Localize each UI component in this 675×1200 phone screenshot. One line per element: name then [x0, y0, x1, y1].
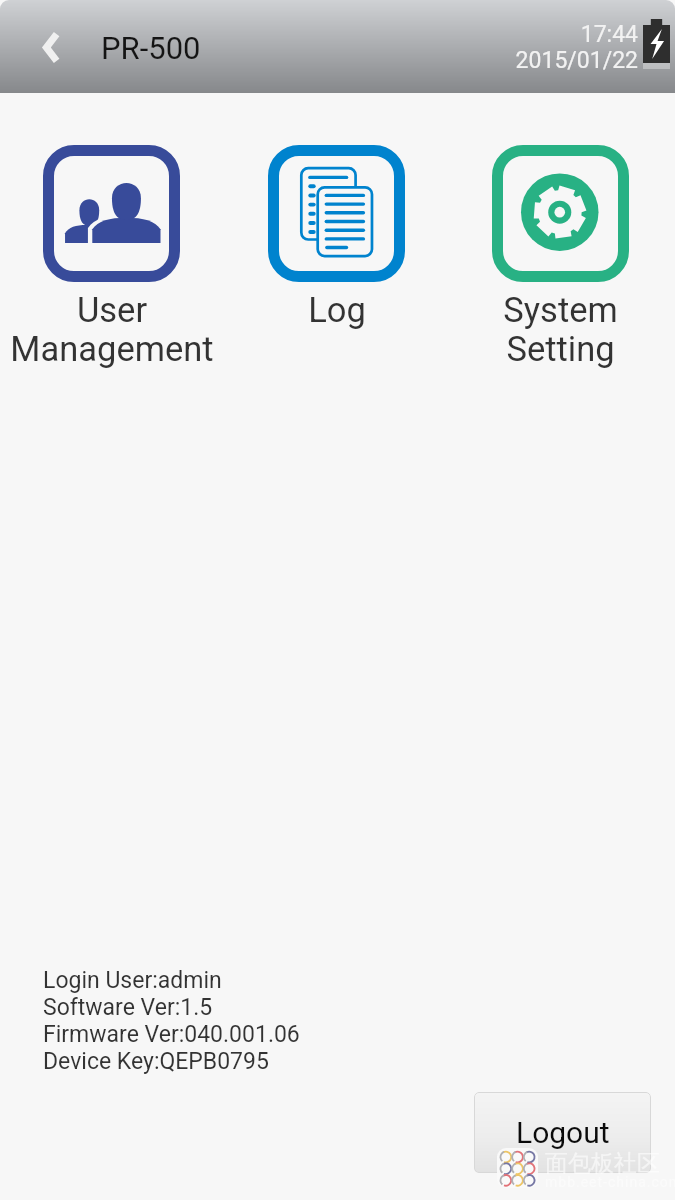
staticText: Log [308, 290, 366, 330]
button[interactable]: Back [24, 21, 76, 73]
staticText: Device Key:QEPB0795 [43, 1048, 269, 1075]
button[interactable]: System Setting [448, 145, 673, 370]
staticText: 17:44 [514, 21, 638, 47]
staticText: User Management [10, 290, 214, 370]
staticText: PR-500 [101, 30, 201, 66]
staticText: Login User:admin [43, 967, 222, 994]
button[interactable]: Log [224, 145, 449, 330]
staticText: Firmware Ver:040.001.06 [43, 1021, 300, 1048]
staticText: System Setting [503, 290, 618, 370]
staticText: 2015/01/22 [514, 47, 638, 73]
staticText: Logout [516, 1115, 610, 1150]
button[interactable]: User Management [0, 145, 224, 370]
button[interactable]: Logout [474, 1092, 651, 1173]
staticText: 面包板社区 [545, 1149, 660, 1178]
staticText: Software Ver:1.5 [43, 994, 213, 1021]
